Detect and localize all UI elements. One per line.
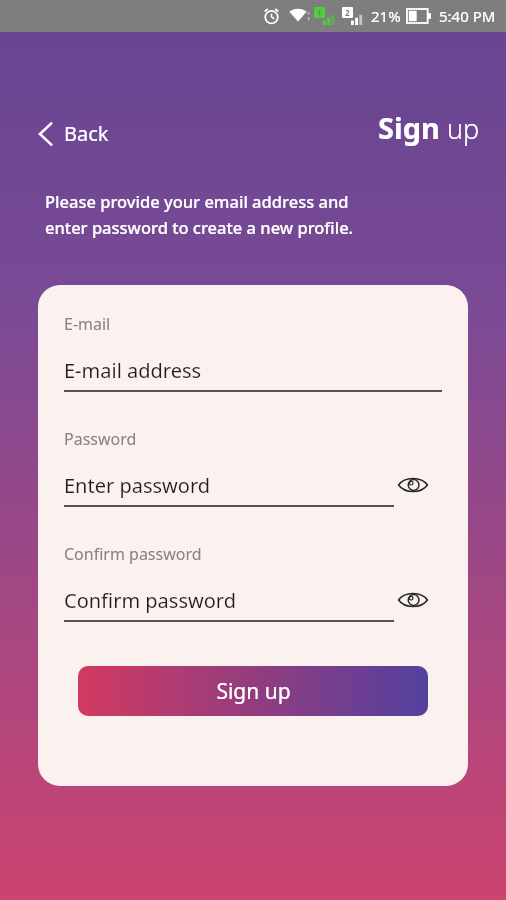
button[interactable]: Sign up — [78, 666, 428, 716]
staticText: Confirm password — [64, 543, 202, 565]
staticText: E-mail — [64, 313, 111, 335]
staticText: 1 — [317, 7, 322, 18]
staticText: 5:40 PM — [439, 6, 496, 26]
button[interactable]: Back — [30, 114, 117, 153]
staticText: 21% — [371, 6, 401, 26]
staticText: 2 — [345, 7, 350, 18]
button[interactable] — [64, 353, 468, 387]
staticText: Password — [64, 428, 137, 450]
staticText: enter password to create a new profile. — [45, 216, 354, 238]
staticText: Please provide your email address and — [45, 190, 349, 212]
button[interactable] — [64, 583, 468, 617]
staticText: Back — [64, 120, 109, 147]
button[interactable]: Show password — [396, 468, 430, 502]
staticText: Sign up — [216, 677, 291, 706]
staticText: Enter password — [64, 472, 211, 499]
button[interactable] — [64, 468, 468, 502]
button[interactable]: Show password — [396, 583, 430, 617]
staticText: E-mail address — [64, 357, 202, 384]
staticText: Confirm password — [64, 587, 236, 614]
staticText: Sign — [378, 108, 440, 147]
staticText: up — [447, 110, 480, 147]
